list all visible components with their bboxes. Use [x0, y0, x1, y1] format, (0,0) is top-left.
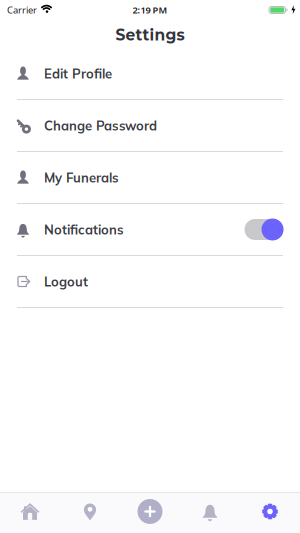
button[interactable]: Edit Profile — [0, 48, 300, 99]
staticText: Edit Profile — [44, 65, 112, 82]
staticText: Logout — [44, 273, 88, 290]
button[interactable]: Notifications — [244, 217, 284, 241]
staticText: My Funerals — [44, 169, 119, 186]
staticText: Change Password — [44, 117, 157, 134]
button[interactable]: Notifications — [180, 492, 240, 530]
button[interactable]: Settings — [240, 492, 300, 530]
button[interactable]: Change Password — [0, 100, 300, 151]
button[interactable]: My Funerals — [0, 152, 300, 203]
staticText: Notifications — [44, 221, 124, 238]
button[interactable]: Home — [0, 492, 60, 530]
button[interactable]: Locations — [60, 492, 120, 530]
button[interactable]: Logout — [0, 256, 300, 307]
staticText: Settings — [115, 26, 184, 44]
staticText: Carrier — [7, 4, 37, 16]
staticText: 2:19 PM — [132, 4, 167, 16]
button[interactable]: Add — [120, 492, 180, 530]
